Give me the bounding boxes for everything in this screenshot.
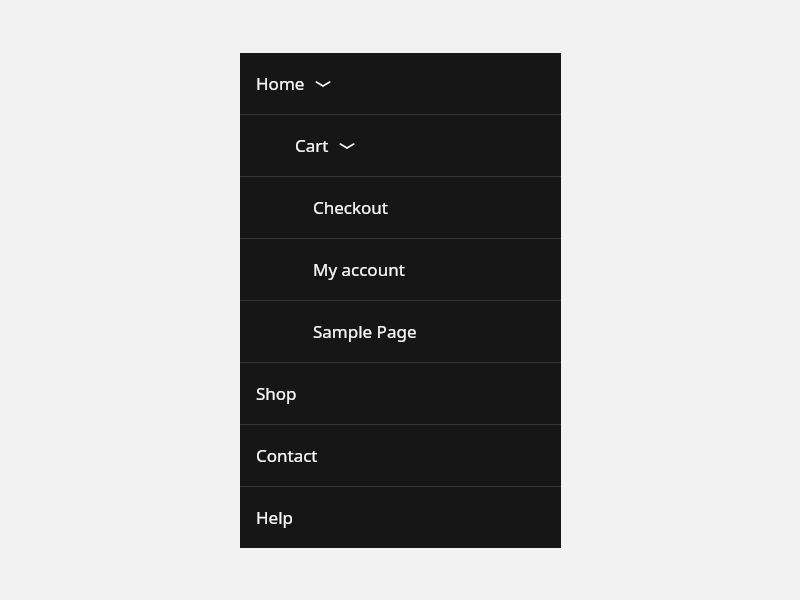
staticText: My account [313,258,405,281]
button[interactable]: Home [240,53,561,114]
button[interactable]: My account [240,239,561,300]
button[interactable]: Help [240,487,561,548]
staticText: Home [256,72,305,95]
button[interactable]: Sample Page [240,301,561,362]
button[interactable]: Contact [240,425,561,486]
staticText: Shop [256,382,297,405]
staticText: Cart [295,134,329,157]
staticText: Help [256,506,294,529]
button[interactable]: Shop [240,363,561,424]
staticText: Sample Page [313,320,417,343]
button[interactable]: Cart [240,115,561,176]
button[interactable]: Checkout [240,177,561,238]
staticText: Contact [256,444,318,467]
other: Expand Cart [339,141,355,151]
staticText: Checkout [313,196,389,219]
other: Expand Home [315,79,331,89]
